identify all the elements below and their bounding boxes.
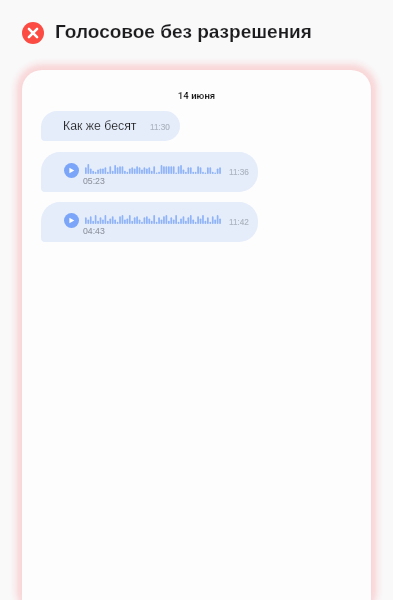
staticText: 11:30: [150, 123, 170, 132]
button[interactable]: Play voice message: [64, 213, 79, 228]
button[interactable]: Play voice message: [41, 152, 258, 192]
staticText: 04:43: [83, 226, 105, 236]
button[interactable]: Close: [22, 22, 44, 44]
staticText: 14 июня: [22, 90, 371, 101]
button[interactable]: Play voice message: [64, 163, 79, 178]
staticText: 11:42: [229, 218, 249, 227]
staticText: Как же бесят: [63, 119, 137, 133]
button[interactable]: Play voice message: [41, 202, 258, 242]
staticText: 05:23: [83, 176, 105, 186]
staticText: Голосовое без разрешения: [55, 21, 312, 42]
button[interactable]: Как же бесят: [41, 111, 180, 141]
staticText: 11:36: [229, 168, 249, 177]
